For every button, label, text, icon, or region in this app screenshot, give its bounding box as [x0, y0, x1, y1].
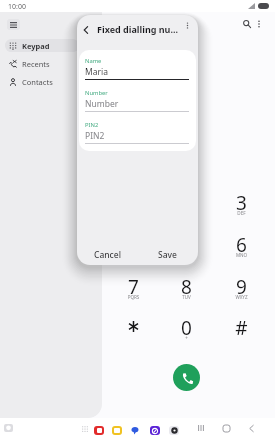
button[interactable]: App — [112, 426, 122, 435]
button[interactable]: Keypad — [5, 39, 79, 52]
button[interactable] — [111, 311, 156, 349]
button[interactable]: Cancel — [77, 244, 137, 265]
staticText: 9 — [219, 274, 264, 300]
staticText: Save — [158, 249, 177, 261]
staticText: 3 — [219, 190, 264, 216]
staticText: Number — [85, 89, 108, 97]
staticText: PIN2 — [85, 121, 99, 129]
staticText: PQRS — [111, 294, 156, 300]
button[interactable]: 3 — [219, 186, 264, 224]
button[interactable]: Recents — [5, 57, 79, 70]
button[interactable]: Back — [244, 421, 258, 435]
staticText: 0 — [164, 315, 209, 341]
button[interactable]: 0 — [164, 311, 209, 349]
staticText: 4 — [111, 232, 156, 258]
button[interactable]: Menu — [7, 19, 20, 30]
staticText: 5 — [164, 232, 209, 258]
staticText: MNO — [219, 252, 264, 258]
staticText: Fixed dialling nu... — [97, 23, 179, 35]
button[interactable]: More options — [251, 16, 267, 32]
button[interactable]: 9 — [219, 270, 264, 308]
staticText: WXYZ — [219, 294, 264, 300]
button[interactable]: App — [94, 426, 104, 435]
staticText: ABC — [164, 210, 209, 216]
staticText: Maria — [85, 66, 108, 78]
button[interactable]: Recents — [194, 421, 208, 435]
staticText: DEF — [219, 210, 264, 216]
staticText: 7 — [111, 274, 156, 300]
button[interactable]: Back — [77, 21, 94, 38]
button[interactable]: 6 — [219, 228, 264, 266]
staticText: 10:00 — [8, 2, 26, 12]
staticText: PIN2 — [85, 130, 105, 142]
button[interactable]: # — [219, 311, 264, 349]
button[interactable]: 5 — [164, 228, 209, 266]
staticText: TUV — [164, 294, 209, 300]
staticText: GHI — [111, 252, 156, 258]
staticText: 6 — [219, 232, 264, 258]
staticText: Recents — [22, 59, 50, 69]
button[interactable]: Home — [219, 421, 233, 435]
staticText: Name — [85, 57, 102, 65]
staticText: JKL — [164, 252, 209, 258]
button[interactable]: App — [169, 426, 179, 435]
button[interactable]: App — [150, 426, 160, 435]
staticText: Contacts — [22, 77, 53, 87]
button[interactable]: 8 — [164, 270, 209, 308]
staticText: 8 — [164, 274, 209, 300]
button[interactable]: 2 — [164, 186, 209, 224]
button[interactable]: Save — [137, 244, 198, 265]
button[interactable]: Call — [173, 364, 200, 391]
staticText: Cancel — [94, 249, 121, 261]
staticText: + — [164, 335, 209, 341]
button[interactable]: More options — [180, 18, 194, 32]
staticText: 2 — [164, 190, 209, 216]
button[interactable]: Contacts — [5, 75, 79, 88]
button[interactable]: 7 — [111, 270, 156, 308]
staticText: Number — [85, 98, 119, 110]
button[interactable]: Search — [239, 16, 255, 32]
staticText: # — [219, 315, 264, 341]
staticText: Keypad — [22, 41, 50, 51]
button[interactable]: App — [130, 426, 140, 435]
button[interactable]: 4 — [111, 228, 156, 266]
